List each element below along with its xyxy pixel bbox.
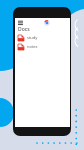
button[interactable]: study [15,33,70,42]
staticText: notes [27,44,38,49]
button[interactable]: Menu [17,19,23,25]
button[interactable]: notes [15,42,70,51]
staticText: Docs [18,26,30,33]
button[interactable]: Account [43,19,50,26]
staticText: study [27,35,38,40]
